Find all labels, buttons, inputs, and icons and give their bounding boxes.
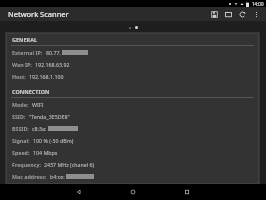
staticText: b4:ce: [50,173,65,180]
staticText: Frequency: [12,161,41,168]
button[interactable]: External IP: [6,46,259,58]
button[interactable]: Signal: [6,134,259,146]
button[interactable]: SSID: [6,110,259,122]
staticText: 2437 MHz (chanel 6) [44,161,95,168]
staticText: c8:3a: [32,125,47,132]
button[interactable]: Host: [6,70,259,82]
button[interactable]: Mode: [6,98,259,110]
button[interactable]: Wan IP: [6,58,259,70]
button[interactable]: Speed: [6,146,259,158]
staticText: WIFI [32,101,44,108]
staticText: SSID: [12,113,26,120]
button[interactable]: Frequency: [6,158,259,170]
button[interactable]: More options [249,7,263,21]
staticText: Mode: [12,101,29,108]
button[interactable]: Refresh [235,7,249,21]
staticText: 14:00 [252,1,264,7]
button[interactable]: Mac address: [6,170,259,182]
staticText: "Tenda_3E5DE8" [29,113,70,120]
button[interactable]: BSSID: [6,122,259,134]
staticText: CONNECTION [12,88,50,95]
button[interactable]: Recents [179,184,195,200]
staticText: 192.168.1.100 [29,73,64,80]
staticText: 100 % (-50 dBm) [33,137,74,144]
staticText: GENERAL [12,36,38,43]
staticText: Network Scanner [8,9,69,19]
staticText: Host: [12,73,26,80]
button[interactable]: Home [125,184,141,200]
button[interactable]: Save [207,7,221,21]
staticText: 192.168.63.92 [35,61,70,68]
staticText: 80.77. [46,49,61,56]
staticText: BSSID: [12,125,29,132]
staticText: Signal: [12,137,30,144]
staticText: Speed: [12,149,30,156]
staticText: External IP: [12,49,43,56]
staticText: 104 Mbps [33,149,58,156]
staticText: Wan IP: [12,61,32,68]
button[interactable]: Back [71,184,87,200]
staticText: Mac address: [12,173,47,180]
button[interactable]: Open folder [221,7,235,21]
